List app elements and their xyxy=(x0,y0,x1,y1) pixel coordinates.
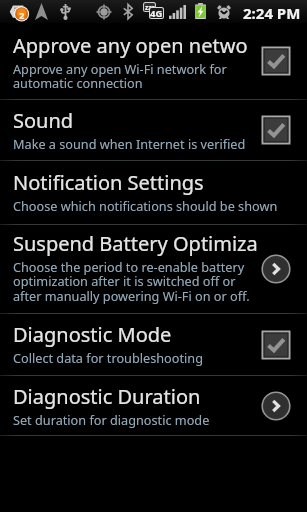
staticText: zzz xyxy=(145,3,155,12)
staticText: Choose the period to re-enable battery o… xyxy=(13,258,250,305)
button[interactable]: Open settings xyxy=(261,391,291,421)
staticText: Diagnostic Duration xyxy=(13,383,201,410)
staticText: Collect data for troubleshooting xyxy=(13,349,203,366)
staticText: 4G xyxy=(150,7,163,19)
staticText: Suspend Battery Optimiza xyxy=(13,230,258,257)
button[interactable]: Toggle setting xyxy=(261,115,291,145)
staticText: Make a sound when Internet is verified xyxy=(13,135,246,152)
button[interactable]: Approve any open netwo xyxy=(0,23,307,99)
button[interactable]: Toggle setting xyxy=(261,46,291,76)
staticText: Notification Settings xyxy=(13,169,204,196)
button[interactable]: Diagnostic Mode xyxy=(0,314,307,375)
staticText: 2:24 PM xyxy=(243,3,301,23)
button[interactable]: Open settings xyxy=(261,254,291,284)
button[interactable]: Notification Settings xyxy=(0,161,307,224)
staticText: Choose which notifications should be sho… xyxy=(13,197,278,214)
staticText: Diagnostic Mode xyxy=(13,321,172,348)
button[interactable]: Suspend Battery Optimiza xyxy=(0,225,307,313)
staticText: 2 xyxy=(19,9,25,22)
staticText: Set duration for diagnostic mode xyxy=(13,411,210,428)
button[interactable]: Sound xyxy=(0,100,307,160)
button[interactable]: Diagnostic Duration xyxy=(0,376,307,435)
button[interactable]: Toggle setting xyxy=(261,330,291,360)
staticText: Sound xyxy=(13,107,74,134)
staticText: Approve any open netwo xyxy=(13,32,248,59)
staticText: Approve any open Wi-Fi network for autom… xyxy=(13,60,227,92)
